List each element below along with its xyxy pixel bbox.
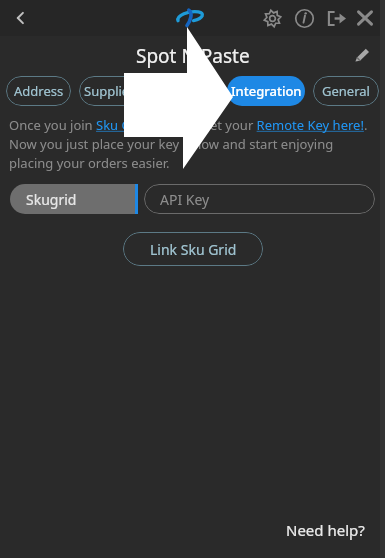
button[interactable]: API Key bbox=[144, 184, 375, 214]
button[interactable]: Integration bbox=[227, 76, 305, 106]
staticText: General bbox=[322, 82, 370, 100]
button[interactable]: Need help? bbox=[282, 516, 369, 544]
button[interactable]: Skugrid bbox=[10, 184, 135, 214]
staticText: Link Sku Grid bbox=[150, 240, 237, 259]
button[interactable]: Log out bbox=[322, 4, 350, 32]
button[interactable]: Link Sku Grid bbox=[123, 232, 263, 266]
staticText: Spot N Paste bbox=[136, 43, 250, 69]
staticText: Skugrid bbox=[26, 190, 77, 209]
button[interactable]: Info bbox=[290, 4, 318, 32]
staticText: Suppliers bbox=[84, 82, 141, 100]
button[interactable]: Address bbox=[6, 76, 71, 106]
staticText: Integration bbox=[231, 82, 302, 100]
staticText: Once you join Sku Grid you can get your … bbox=[9, 116, 376, 172]
button[interactable]: Settings bbox=[258, 4, 286, 32]
button[interactable]: Suppliers bbox=[79, 76, 145, 106]
button[interactable]: Edit bbox=[347, 42, 375, 70]
staticText: Need help? bbox=[286, 520, 365, 540]
button[interactable]: Back bbox=[6, 3, 36, 33]
staticText: API Key bbox=[160, 190, 210, 209]
staticText: Address bbox=[14, 82, 64, 100]
button[interactable]: Close bbox=[351, 4, 379, 32]
button[interactable]: General bbox=[313, 76, 379, 106]
button[interactable]: Logo bbox=[173, 4, 207, 32]
